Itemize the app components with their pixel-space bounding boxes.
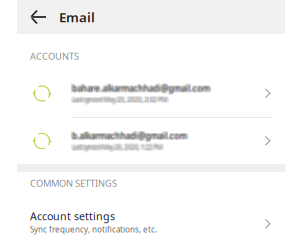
staticText: b.alkarmachhadi@gmail.com bbox=[71, 130, 185, 140]
staticText: Last synced May 20, 2020, 1:22 PM bbox=[71, 142, 161, 150]
staticText: Last synced May 20, 2020, 2:02 PM bbox=[72, 95, 168, 104]
staticText: bahare.alkarmachhadi@gmail.com bbox=[72, 84, 210, 95]
staticText: b.alkarmachhadi@gmail.com bbox=[73, 131, 188, 141]
staticText: Last synced May 20, 2020, 1:22 PM bbox=[73, 144, 164, 152]
staticText: Last synced May 20, 2020, 2:02 PM bbox=[73, 94, 169, 103]
staticText: bahare.alkarmachhadi@gmail.com bbox=[71, 84, 208, 95]
staticText: Last synced May 20, 2020, 1:22 PM bbox=[73, 143, 164, 151]
staticText: Last synced May 20, 2020, 2:02 PM bbox=[71, 94, 166, 103]
staticText: b.alkarmachhadi@gmail.com bbox=[71, 132, 185, 142]
button[interactable]: Back bbox=[27, 5, 49, 29]
staticText: Last synced May 20, 2020, 1:22 PM bbox=[71, 144, 161, 152]
staticText: bahare.alkarmachhadi@gmail.com bbox=[71, 82, 208, 93]
staticText: bahare.alkarmachhadi@gmail.com bbox=[72, 83, 210, 94]
button[interactable]: Account settings bbox=[17, 196, 285, 244]
staticText: b.alkarmachhadi@gmail.com bbox=[72, 132, 187, 142]
staticText: COMMON SETTINGS bbox=[30, 177, 117, 189]
staticText: bahare.alkarmachhadi@gmail.com bbox=[72, 82, 210, 93]
staticText: Last synced May 20, 2020, 2:02 PM bbox=[72, 94, 168, 103]
staticText: Last synced May 20, 2020, 2:02 PM bbox=[73, 96, 169, 105]
button[interactable]: b.alkarmachhadi@gmail.com bbox=[17, 118, 285, 164]
staticText: b.alkarmachhadi@gmail.com bbox=[73, 130, 188, 140]
staticText: Last synced May 20, 2020, 1:22 PM bbox=[72, 143, 163, 151]
staticText: Last synced May 20, 2020, 2:02 PM bbox=[72, 96, 168, 105]
staticText: b.alkarmachhadi@gmail.com bbox=[71, 131, 185, 141]
staticText: Last synced May 20, 2020, 1:22 PM bbox=[72, 142, 163, 150]
staticText: Email bbox=[59, 8, 95, 26]
button[interactable]: bahare.alkarmachhadi@gmail.com bbox=[17, 70, 285, 117]
staticText: ACCOUNTS bbox=[30, 50, 79, 62]
staticText: Last synced May 20, 2020, 1:22 PM bbox=[73, 142, 164, 150]
staticText: Sync frequency, notifications, etc. bbox=[30, 224, 157, 235]
staticText: Last synced May 20, 2020, 2:02 PM bbox=[73, 95, 169, 104]
staticText: Last synced May 20, 2020, 2:02 PM bbox=[71, 96, 166, 105]
staticText: bahare.alkarmachhadi@gmail.com bbox=[71, 83, 208, 94]
staticText: bahare.alkarmachhadi@gmail.com bbox=[73, 84, 211, 95]
staticText: b.alkarmachhadi@gmail.com bbox=[73, 132, 188, 142]
staticText: Last synced May 20, 2020, 1:22 PM bbox=[72, 144, 163, 152]
staticText: b.alkarmachhadi@gmail.com bbox=[72, 131, 187, 141]
staticText: bahare.alkarmachhadi@gmail.com bbox=[73, 83, 211, 94]
staticText: bahare.alkarmachhadi@gmail.com bbox=[73, 82, 211, 93]
staticText: b.alkarmachhadi@gmail.com bbox=[72, 130, 187, 140]
staticText: Account settings bbox=[30, 209, 115, 223]
staticText: Last synced May 20, 2020, 2:02 PM bbox=[71, 95, 166, 104]
staticText: Last synced May 20, 2020, 1:22 PM bbox=[71, 143, 161, 151]
